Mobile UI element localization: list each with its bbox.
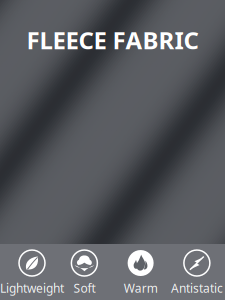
- staticText: FLEECE FABRIC: [26, 24, 198, 56]
- staticText: Warm: [124, 280, 158, 296]
- staticText: Lightweight: [0, 280, 64, 296]
- button[interactable]: Antistatic: [169, 244, 225, 300]
- staticText: Soft: [73, 280, 95, 296]
- button[interactable]: Soft: [56, 244, 112, 300]
- staticText: Antistatic: [171, 280, 223, 296]
- button[interactable]: Warm: [112, 244, 169, 300]
- button[interactable]: Lightweight: [0, 244, 56, 300]
